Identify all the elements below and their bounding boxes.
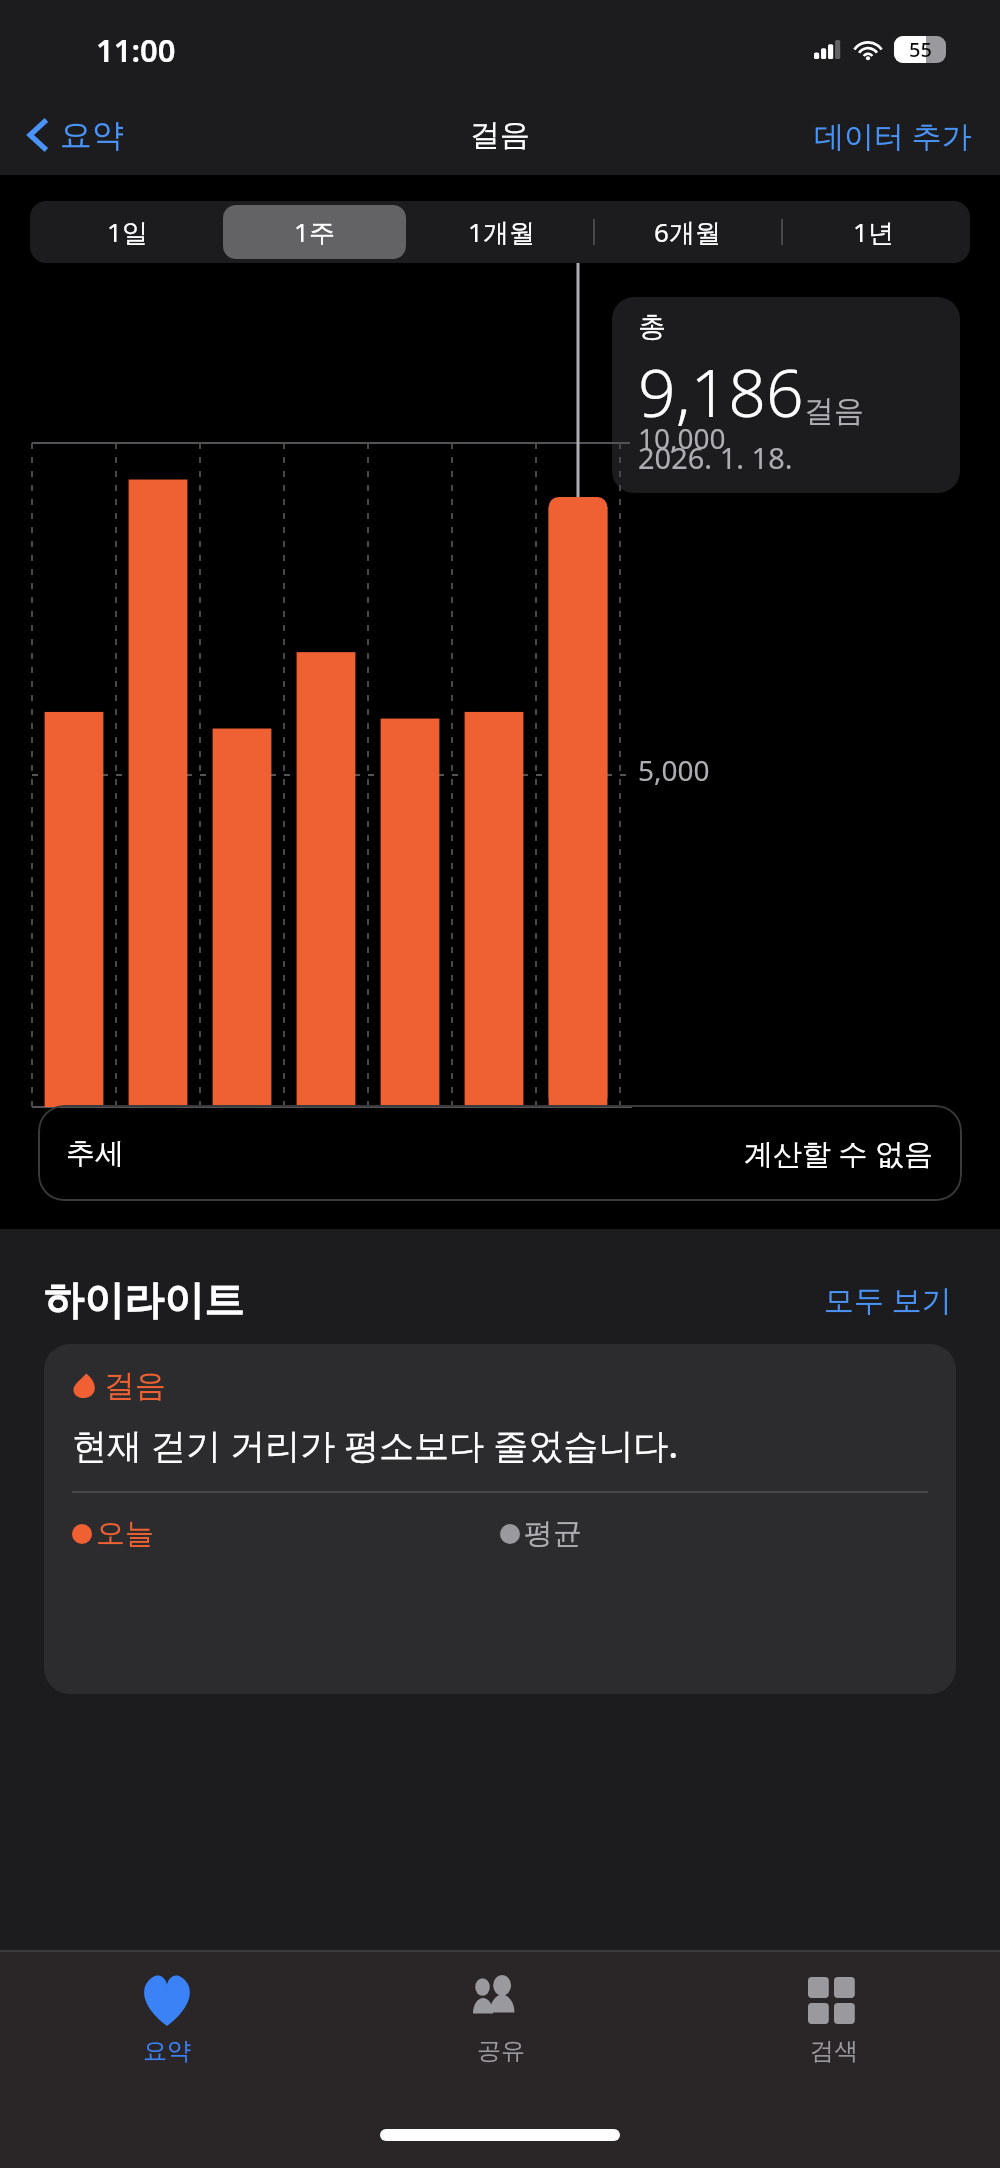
button[interactable]: 데이터 추가	[808, 107, 978, 164]
staticText: 요약	[143, 2036, 191, 2066]
staticText: 걸음	[804, 392, 864, 430]
staticText: 11:00	[96, 29, 176, 71]
button[interactable]: 1개월	[410, 205, 592, 259]
staticText: 검색	[810, 2036, 858, 2066]
staticText: 55	[909, 36, 932, 63]
button[interactable]: 공유	[334, 1952, 667, 2102]
staticText: 추세	[66, 1135, 124, 1172]
staticText: 현재 걷기 거리가 평소보다 줄었습니다.	[72, 1421, 678, 1469]
button[interactable]: 모두 보기	[820, 1273, 956, 1326]
staticText: 1일	[107, 214, 148, 250]
button[interactable]: 요약	[22, 109, 130, 161]
button[interactable]: 1주	[223, 205, 406, 259]
staticText: 평균	[524, 1515, 582, 1552]
staticText: 1주	[294, 214, 335, 250]
staticText: 6개월	[654, 214, 721, 250]
staticText: 하이라이트	[44, 1275, 244, 1325]
staticText: 계산할 수 없음	[744, 1133, 934, 1173]
staticText: 10,000	[638, 419, 726, 457]
staticText: 5,000	[638, 751, 710, 789]
button[interactable]: 추세	[38, 1105, 962, 1201]
staticText: 9,186	[638, 346, 804, 436]
staticText: 총	[638, 309, 666, 344]
button[interactable]: 요약	[0, 1952, 334, 2102]
button[interactable]: 걸음	[44, 1344, 956, 1694]
staticText: 1년	[853, 214, 894, 250]
button[interactable]: 6개월	[596, 205, 778, 259]
staticText: 요약	[60, 115, 124, 155]
button[interactable]: 검색	[667, 1952, 1000, 2102]
staticText: 2026. 1. 18.	[638, 438, 793, 477]
staticText: 공유	[477, 2036, 525, 2066]
staticText: 오늘	[96, 1515, 154, 1552]
button[interactable]: 1년	[782, 205, 964, 259]
staticText: 걸음	[470, 116, 530, 154]
button[interactable]: 1일	[36, 205, 219, 259]
staticText: 1개월	[468, 214, 535, 250]
staticText: 걸음	[104, 1366, 166, 1405]
